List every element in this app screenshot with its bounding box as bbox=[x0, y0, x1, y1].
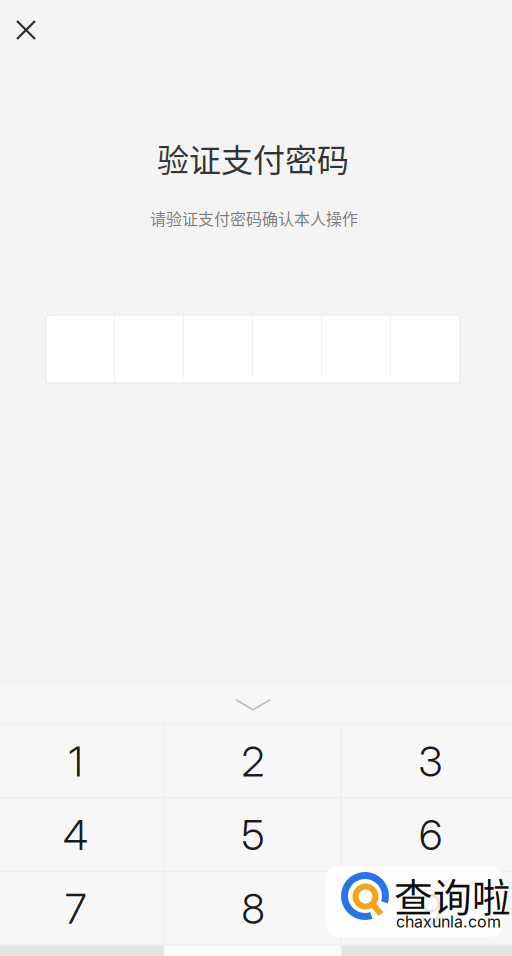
button[interactable]: 8 bbox=[164, 872, 342, 946]
staticText: 4 bbox=[63, 810, 88, 860]
button[interactable]: 9 bbox=[342, 872, 512, 946]
button[interactable]: 5 bbox=[164, 798, 342, 872]
button[interactable]: 1 bbox=[0, 724, 164, 798]
staticText: 8 bbox=[241, 884, 264, 934]
staticText: 请验证支付密码确认本人操作 bbox=[150, 206, 358, 230]
button[interactable]: 4 bbox=[0, 798, 164, 872]
staticText: 6 bbox=[419, 810, 442, 860]
staticText: 2 bbox=[241, 736, 264, 786]
staticText: 7 bbox=[65, 884, 86, 934]
staticText: 5 bbox=[241, 810, 264, 860]
button[interactable]: 6 bbox=[342, 798, 512, 872]
button[interactable]: Hide keyboard bbox=[208, 685, 298, 724]
button[interactable]: 7 bbox=[0, 872, 164, 946]
button[interactable]: 3 bbox=[342, 724, 512, 798]
button[interactable]: Close bbox=[0, 6, 52, 54]
staticText: chaxunla.com bbox=[396, 912, 501, 931]
staticText: 3 bbox=[418, 736, 442, 786]
button[interactable]: 2 bbox=[164, 724, 342, 798]
staticText: 9 bbox=[419, 884, 442, 934]
staticText: 1 bbox=[68, 736, 82, 786]
staticText: 查询啦 bbox=[394, 867, 511, 923]
staticText: 验证支付密码 bbox=[157, 135, 349, 181]
